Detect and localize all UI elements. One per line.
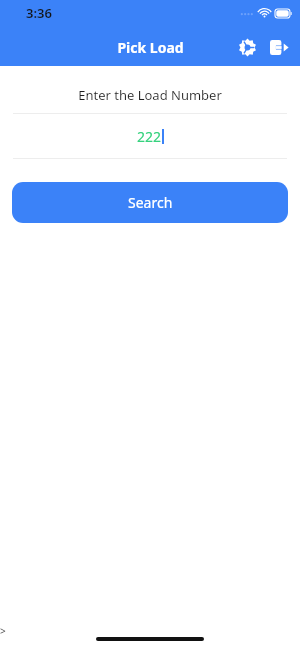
staticText: Search xyxy=(128,193,173,212)
button[interactable]: Logout xyxy=(264,32,294,62)
staticText: Enter the Load Number xyxy=(0,86,300,104)
staticText: 3:36 xyxy=(26,4,52,22)
button[interactable]: Settings xyxy=(232,32,262,62)
staticText: 222 xyxy=(137,127,162,146)
staticText: > xyxy=(0,624,6,638)
button[interactable]: 222 xyxy=(0,114,300,158)
button[interactable]: Search xyxy=(12,182,288,223)
staticText: Pick Load xyxy=(117,38,184,57)
